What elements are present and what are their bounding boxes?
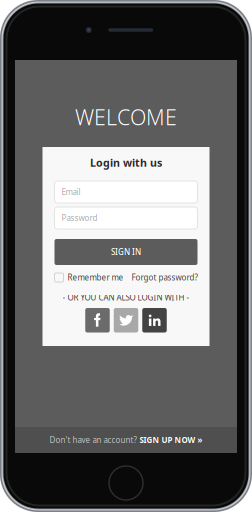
staticText: SIGN UP NOW » [139, 435, 202, 445]
staticText: Forgot password? [131, 272, 197, 283]
staticText: WELCOME [75, 103, 177, 131]
staticText: Password [61, 213, 97, 223]
staticText: - OR YOU CAN ALSO LOGIN WITH - [62, 292, 189, 303]
button[interactable]: Email [54, 181, 197, 203]
staticText: Don't have an account? [49, 435, 136, 445]
button[interactable]: Sign in with Facebook [85, 308, 110, 332]
button[interactable]: Password [54, 207, 197, 229]
button[interactable]: Remember me [54, 272, 123, 283]
button[interactable]: Sign in with Twitter [114, 308, 138, 332]
button[interactable]: Forgot password? [131, 272, 197, 283]
staticText: Email [61, 187, 80, 197]
staticText: SIGN IN [111, 247, 141, 257]
button[interactable]: SIGN IN [54, 239, 197, 265]
button[interactable]: Sign in with LinkedIn [142, 308, 167, 332]
staticText: Login with us [90, 155, 162, 170]
staticText: Remember me [67, 272, 123, 283]
button[interactable]: Don't have an account? [15, 427, 237, 453]
